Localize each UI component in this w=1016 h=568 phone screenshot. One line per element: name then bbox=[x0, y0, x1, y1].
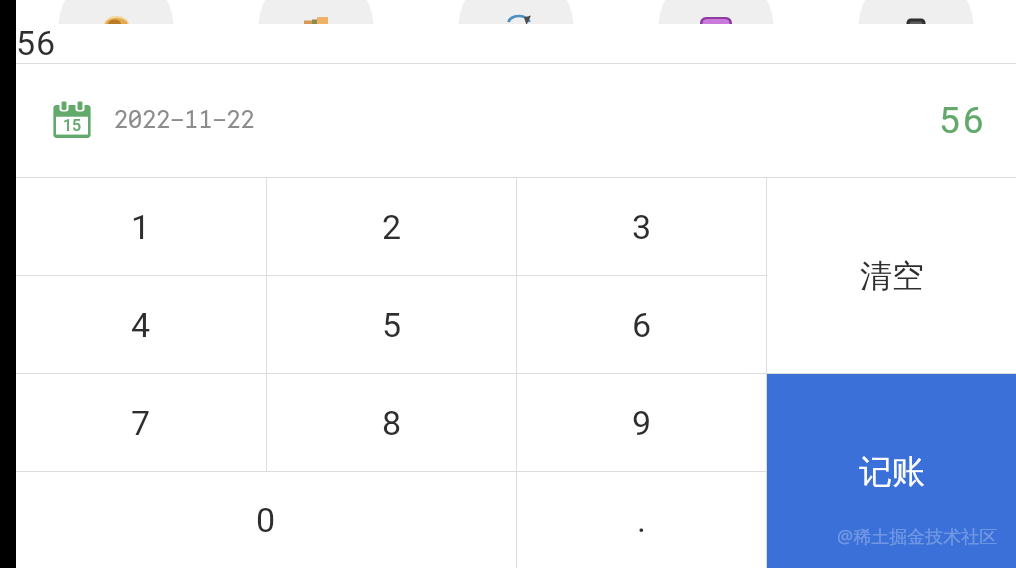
staticText: 15 bbox=[63, 116, 82, 135]
button[interactable]: 9 bbox=[517, 374, 766, 471]
button[interactable]: 0 bbox=[16, 472, 516, 568]
button[interactable]: 记账 bbox=[767, 374, 1016, 568]
button[interactable]: 4 bbox=[16, 276, 266, 373]
button[interactable]: 7 bbox=[16, 374, 266, 471]
button[interactable]: Phone bbox=[859, 0, 974, 24]
staticText: 5 bbox=[382, 305, 402, 345]
staticText: 8 bbox=[382, 403, 402, 443]
button[interactable]: 1 bbox=[16, 178, 266, 275]
staticText: 56 bbox=[939, 99, 987, 142]
staticText: 56 bbox=[16, 23, 57, 62]
staticText: 2 bbox=[382, 207, 402, 247]
button[interactable]: . bbox=[517, 472, 766, 568]
staticText: 9 bbox=[632, 403, 652, 443]
staticText: 6 bbox=[632, 305, 652, 345]
button[interactable]: Travel bbox=[459, 0, 574, 24]
button[interactable]: 2 bbox=[267, 178, 516, 275]
staticText: 4 bbox=[131, 305, 151, 345]
staticText: 7 bbox=[131, 403, 151, 443]
staticText: 记账 bbox=[859, 451, 925, 493]
staticText: 2022-11-22 bbox=[114, 103, 255, 135]
button[interactable]: 清空 bbox=[767, 178, 1016, 373]
staticText: 0 bbox=[256, 500, 276, 540]
staticText: . bbox=[637, 500, 646, 540]
button[interactable]: Food bbox=[59, 0, 174, 24]
button[interactable]: 3 bbox=[517, 178, 766, 275]
button[interactable]: 15 bbox=[16, 64, 1016, 177]
button[interactable]: 8 bbox=[267, 374, 516, 471]
button[interactable]: 5 bbox=[267, 276, 516, 373]
staticText: 3 bbox=[632, 207, 652, 247]
staticText: 1 bbox=[131, 207, 151, 247]
staticText: 清空 bbox=[860, 256, 924, 296]
button[interactable]: Income bbox=[259, 0, 374, 24]
button[interactable]: 6 bbox=[517, 276, 766, 373]
staticText: @稀土掘金技术社区 bbox=[837, 524, 998, 549]
button[interactable]: Shopping bbox=[659, 0, 774, 24]
